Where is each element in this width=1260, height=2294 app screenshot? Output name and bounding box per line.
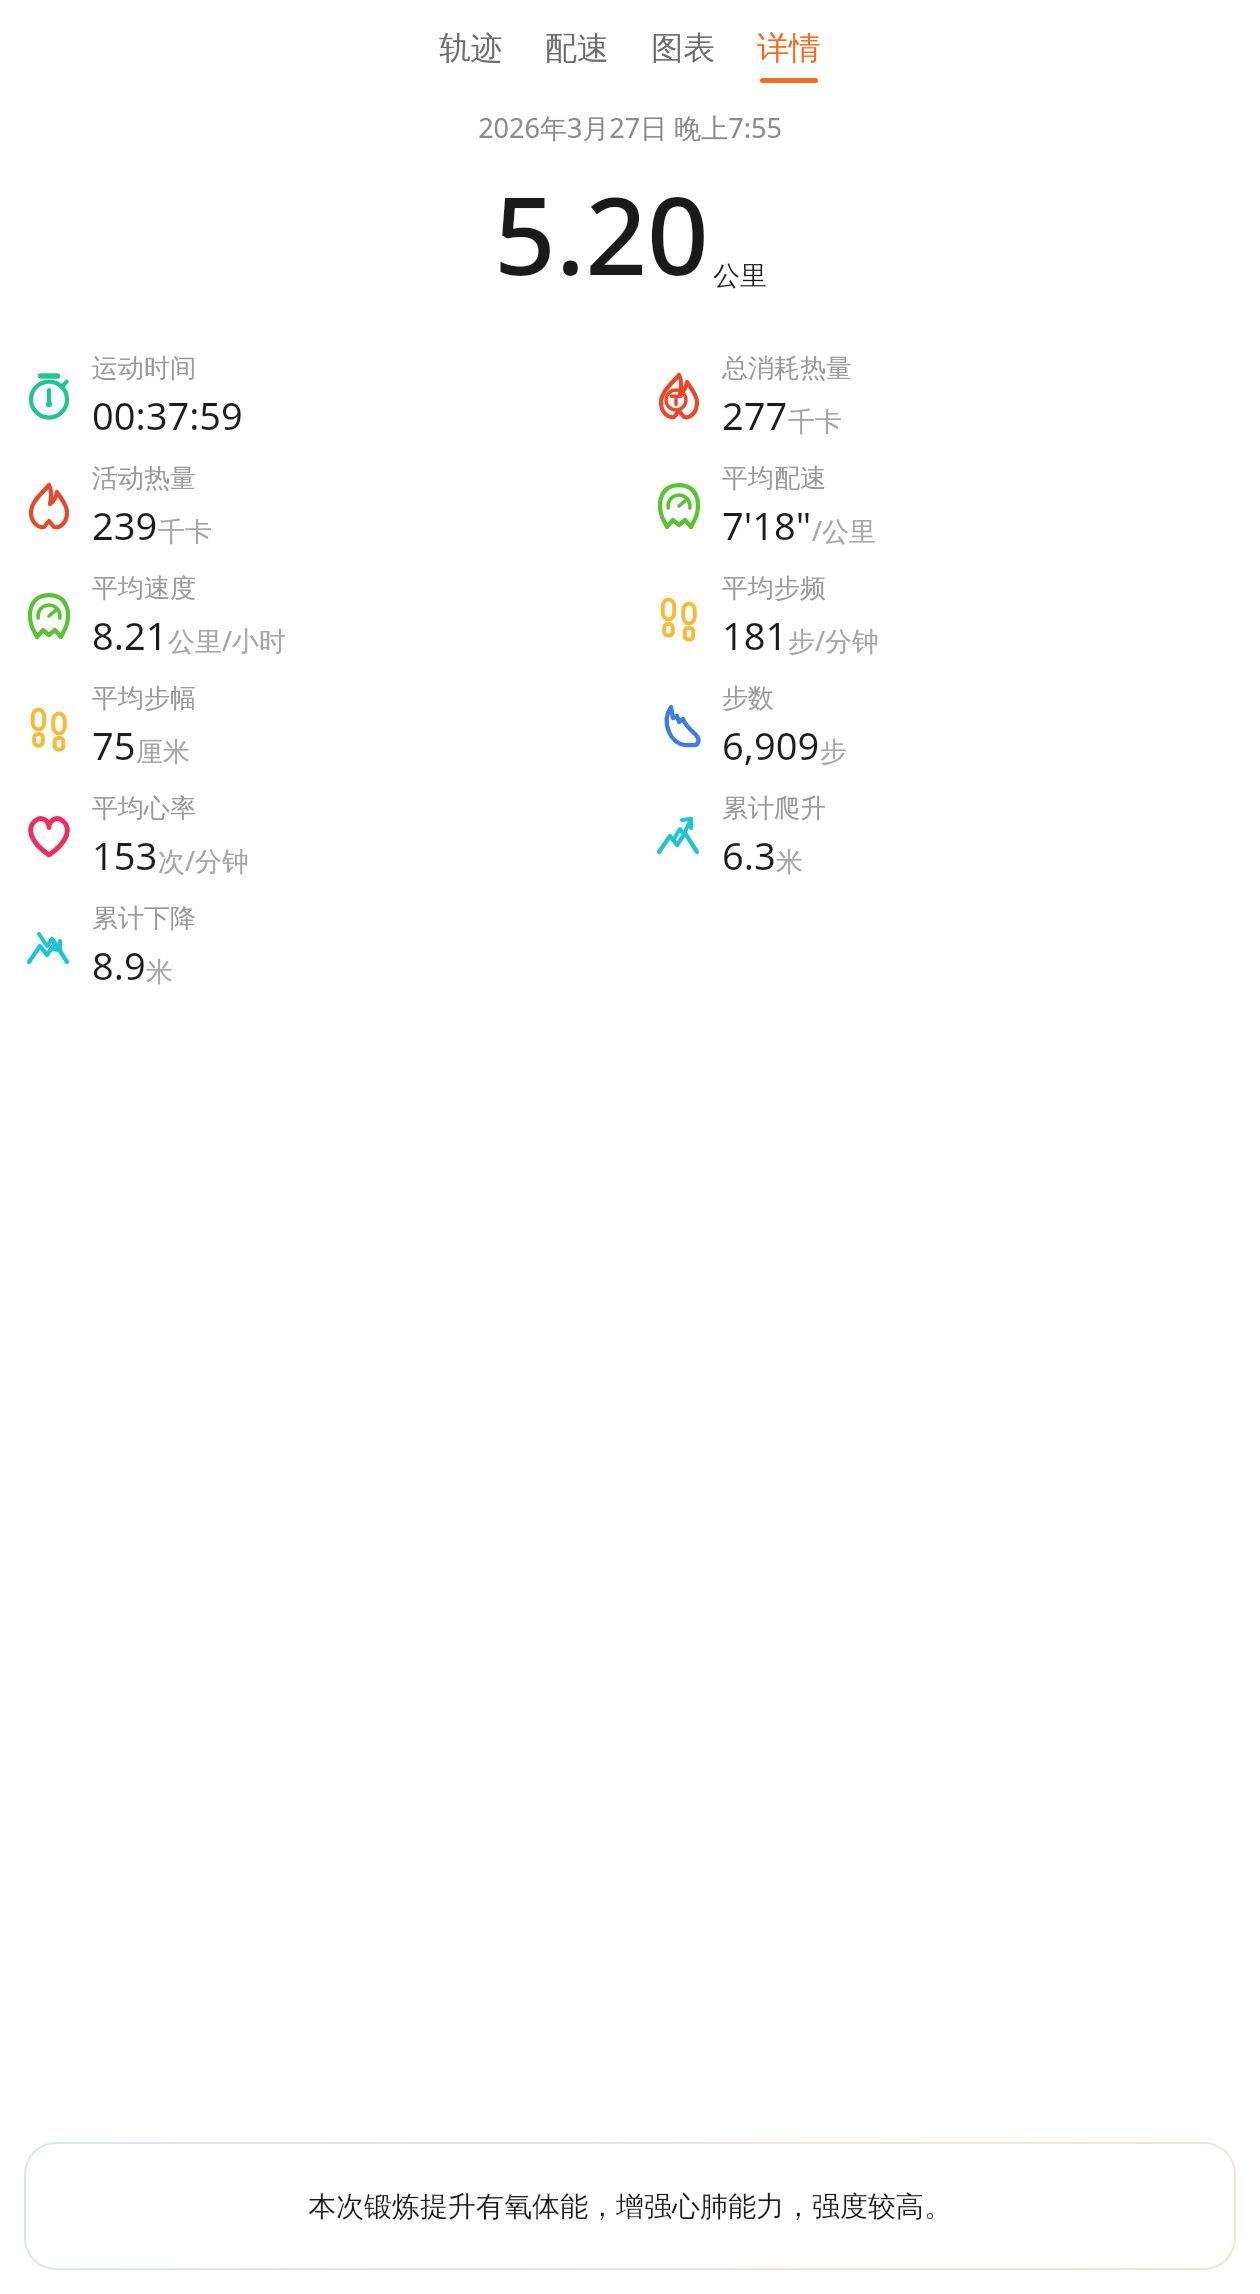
staticText: 6,909 — [722, 719, 820, 771]
other: 步数 — [650, 697, 708, 755]
staticText: 本次锻炼提升有氧体能，增强心肺能力，强度较高。 — [308, 2189, 952, 2224]
other: 平均速度 — [20, 587, 78, 645]
staticText: 75 — [92, 719, 136, 771]
other: 平均心率 — [20, 807, 78, 865]
staticText: 米 — [776, 845, 803, 879]
staticText: 公里 — [713, 259, 767, 293]
staticText: 活动热量 — [92, 462, 196, 495]
button[interactable]: 本次锻炼提升有氧体能，增强心肺能力，强度较高。 — [26, 2144, 1234, 2268]
staticText: 2026年3月27日 晚上7:55 — [0, 109, 1260, 146]
other: 平均配速 — [650, 477, 708, 535]
button[interactable]: 活动热量 — [0, 451, 630, 561]
button[interactable]: 配速 — [535, 24, 619, 87]
staticText: 277 — [722, 389, 788, 441]
button[interactable]: 平均心率 — [0, 781, 630, 891]
button[interactable]: 平均配速 — [630, 451, 1260, 561]
button[interactable]: 图表 — [641, 24, 725, 87]
staticText: 米 — [146, 955, 173, 989]
staticText: 平均心率 — [92, 792, 196, 825]
button[interactable]: 累计下降 — [0, 891, 630, 1001]
button[interactable]: 步数 — [630, 671, 1260, 781]
other: 总消耗热量 — [650, 367, 708, 425]
staticText: 8.9 — [92, 939, 146, 991]
staticText: 步数 — [722, 682, 774, 715]
staticText: 累计爬升 — [722, 792, 826, 825]
staticText: 轨迹 — [439, 28, 503, 68]
button[interactable]: 运动时间 — [0, 341, 630, 451]
staticText: 7'18" — [722, 499, 812, 551]
button[interactable]: 平均步频 — [630, 561, 1260, 671]
other: 活动热量 — [20, 477, 78, 535]
staticText: 平均配速 — [722, 462, 826, 495]
staticText: 平均速度 — [92, 572, 196, 605]
other: 平均步频 — [650, 587, 708, 645]
staticText: 6.3 — [722, 829, 776, 881]
other: 累计下降 — [20, 917, 78, 975]
staticText: 公里/小时 — [168, 622, 287, 659]
staticText: 平均步频 — [722, 572, 826, 605]
staticText: 239 — [92, 499, 158, 551]
staticText: /公里 — [812, 512, 877, 549]
button[interactable]: 平均速度 — [0, 561, 630, 671]
staticText: 千卡 — [788, 405, 842, 439]
button[interactable]: 详情 — [747, 24, 831, 87]
button[interactable]: 轨迹 — [429, 24, 513, 87]
other: 运动时间 — [20, 367, 78, 425]
button[interactable]: 累计爬升 — [630, 781, 1260, 891]
staticText: 181 — [722, 609, 788, 661]
staticText: 步/分钟 — [788, 622, 880, 659]
staticText: 运动时间 — [92, 352, 196, 385]
staticText: 步 — [820, 735, 847, 769]
staticText: 00:37:59 — [92, 389, 243, 441]
other: 累计爬升 — [650, 807, 708, 865]
staticText: 图表 — [651, 28, 715, 68]
button[interactable]: 总消耗热量 — [630, 341, 1260, 451]
staticText: 累计下降 — [92, 902, 196, 935]
staticText: 5.20 — [494, 160, 709, 307]
button[interactable]: 平均步幅 — [0, 671, 630, 781]
staticText: 厘米 — [136, 735, 190, 769]
staticText: 平均步幅 — [92, 682, 196, 715]
staticText: 次/分钟 — [158, 842, 250, 879]
staticText: 详情 — [757, 28, 821, 68]
staticText: 总消耗热量 — [722, 352, 852, 385]
staticText: 配速 — [545, 28, 609, 68]
other: 平均步幅 — [20, 697, 78, 755]
staticText: 千卡 — [158, 515, 212, 549]
staticText: 8.21 — [92, 609, 168, 661]
staticText: 153 — [92, 829, 158, 881]
